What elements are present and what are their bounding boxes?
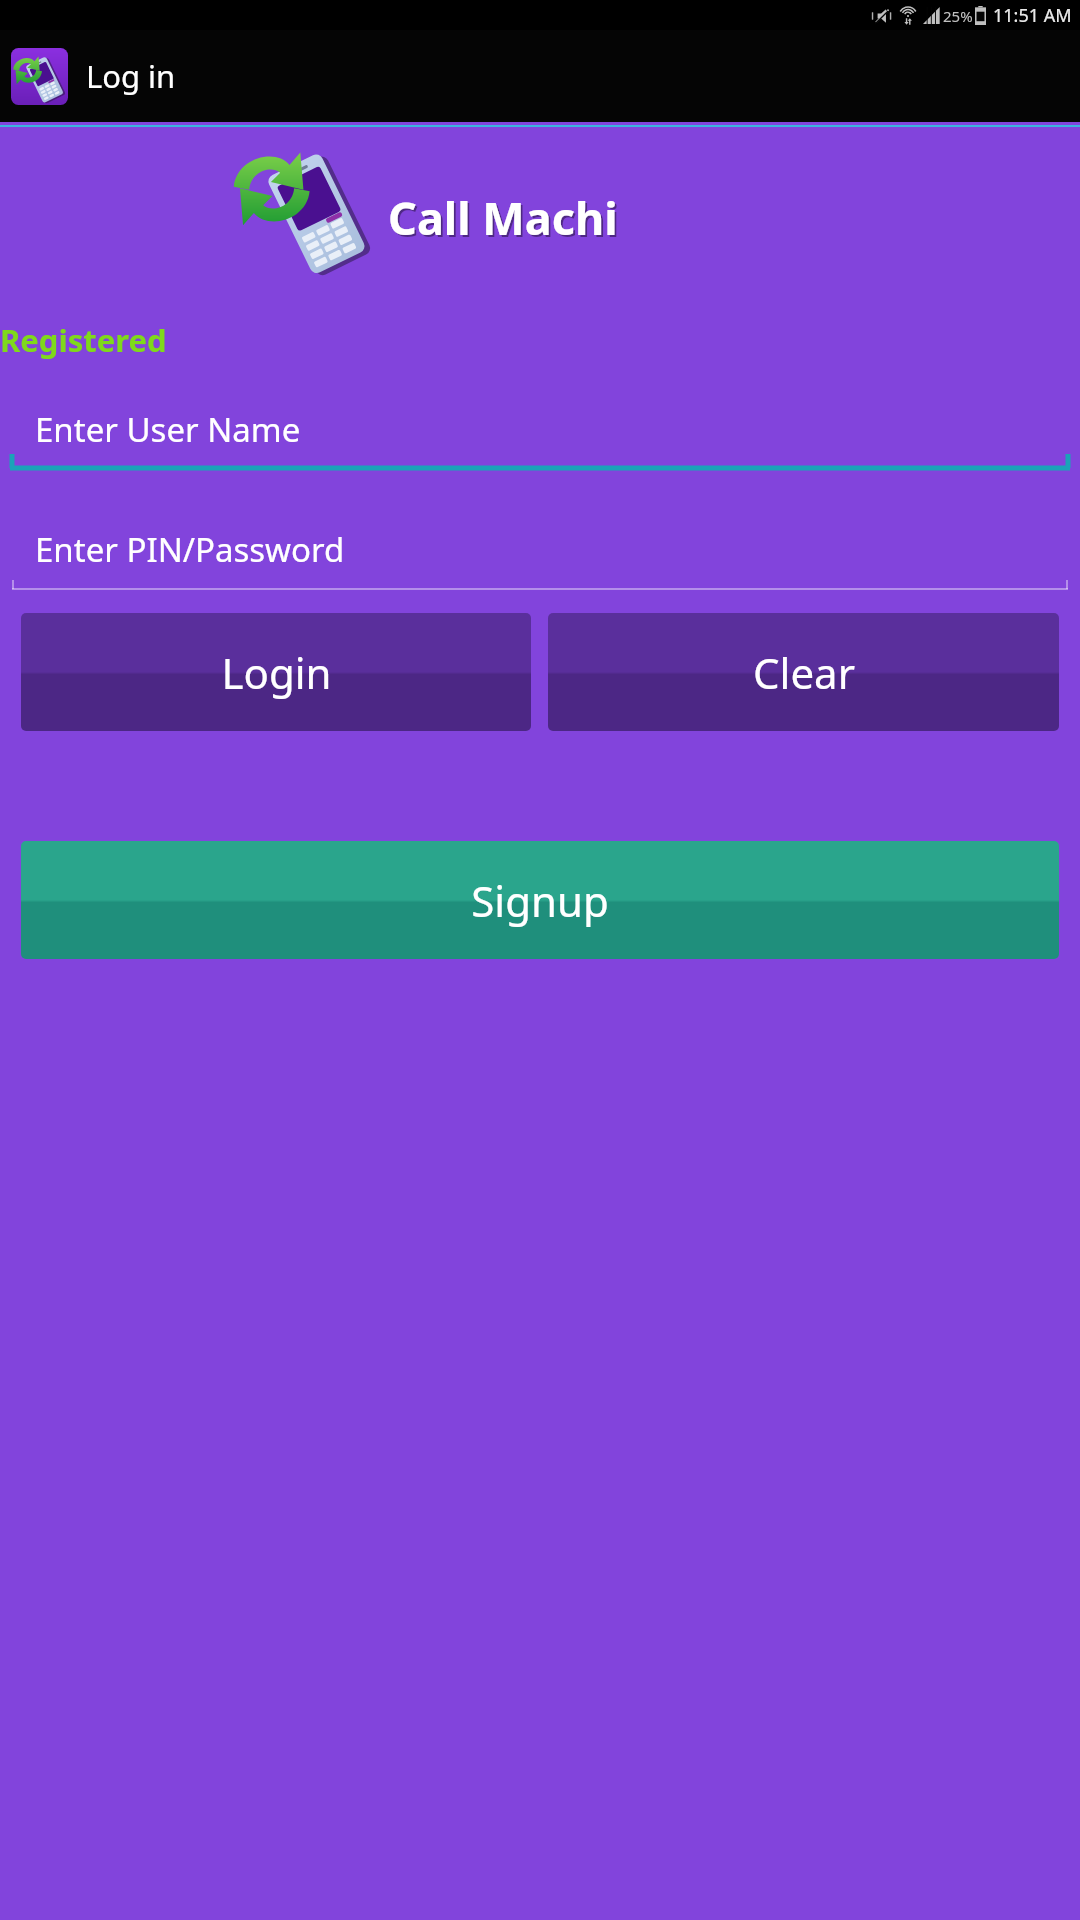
staticText: Signup — [471, 872, 609, 929]
button[interactable]: Enter User Name — [0, 387, 1080, 471]
button[interactable]: Enter PIN/Password — [0, 507, 1080, 591]
staticText: Login — [221, 644, 332, 701]
staticText: 25% — [943, 6, 973, 26]
staticText: Clear — [753, 644, 855, 701]
staticText: Enter User Name — [35, 407, 301, 452]
staticText: Log in — [86, 55, 176, 97]
button[interactable]: Signup — [21, 841, 1059, 959]
staticText: Call Machi — [390, 189, 620, 250]
staticText: Call Machi — [388, 187, 618, 248]
staticText: Registered — [0, 319, 167, 361]
button[interactable]: Clear — [548, 613, 1059, 731]
staticText: Enter PIN/Password — [35, 527, 345, 572]
staticText: 11:51 AM — [993, 3, 1072, 28]
button[interactable]: Login — [21, 613, 531, 731]
